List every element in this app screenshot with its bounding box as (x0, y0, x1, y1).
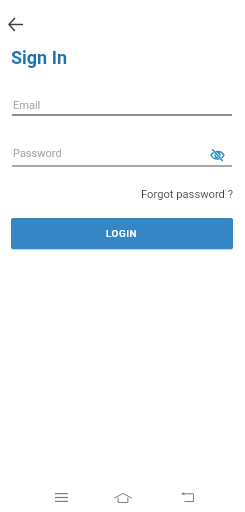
button[interactable]: Home (109, 484, 136, 511)
button[interactable]: Back (1, 10, 30, 39)
button[interactable]: LOGIN (11, 218, 233, 249)
staticText: LOGIN (106, 228, 138, 239)
button[interactable]: Show password (205, 143, 229, 166)
button[interactable]: Recent apps (48, 484, 75, 511)
staticText: Sign In (11, 47, 68, 68)
button[interactable]: Forgot password ? (141, 188, 233, 201)
button[interactable]: Back (174, 484, 201, 511)
staticText: Password (13, 147, 62, 160)
staticText: Email (13, 99, 41, 112)
